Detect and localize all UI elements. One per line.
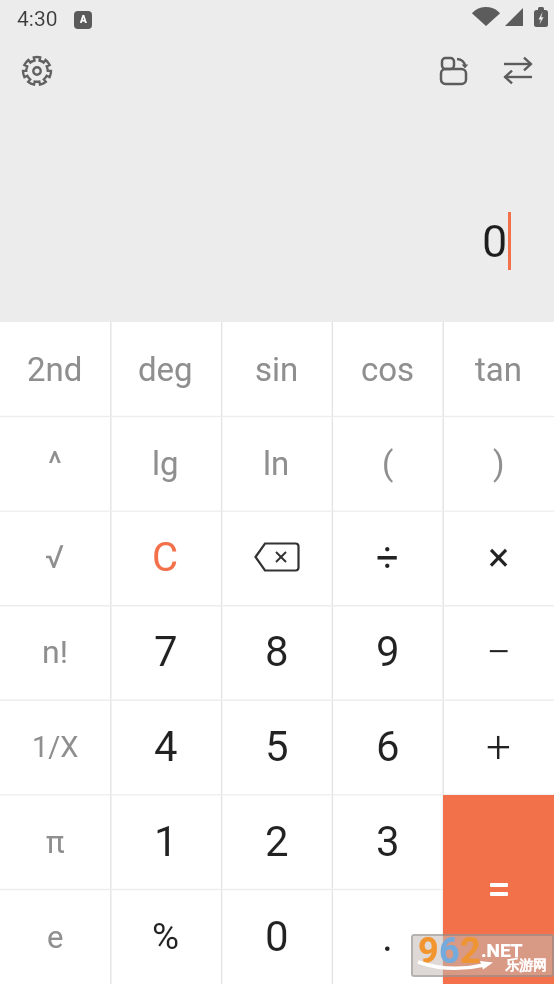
staticText: 3 [376,817,400,866]
staticText: × [488,534,510,581]
staticText: ln [263,444,290,483]
staticText: % [152,915,180,958]
staticText: 0 [482,215,508,268]
button[interactable]: cos [332,322,443,416]
button[interactable]: n! [0,604,110,699]
staticText: + [486,721,511,773]
staticText: ) [493,444,505,483]
staticText: 9 [418,934,439,972]
staticText: 4:30 [17,7,58,32]
staticText: 9 [376,627,400,676]
staticText: 7 [154,627,178,676]
staticText: lg [152,444,179,483]
button[interactable]: ÷ [332,510,443,604]
button[interactable]: 3 [332,794,443,889]
staticText: . [382,912,394,961]
staticText: π [46,824,65,860]
button[interactable]: ( [332,416,443,510]
button[interactable]: deg [110,322,221,416]
staticText: cos [361,350,415,389]
button[interactable]: 2nd [0,322,110,416]
button[interactable]: . [332,889,443,984]
button[interactable]: lg [110,416,221,510]
button[interactable] [428,49,472,93]
staticText: A [80,14,87,26]
button[interactable]: × [443,510,554,604]
button[interactable]: 1 [110,794,221,889]
button[interactable]: 4 [110,699,221,794]
staticText: 乐游网 [505,957,547,975]
staticText: 8 [265,627,289,676]
staticText: tan [475,350,522,389]
button[interactable]: 6 [332,699,443,794]
button[interactable]: tan [443,322,554,416]
staticText: deg [138,350,193,389]
button[interactable]: π [0,794,110,889]
button[interactable]: ) [443,416,554,510]
staticText: n! [42,633,68,671]
button[interactable]: 2 [221,794,332,889]
button[interactable]: 0 [221,889,332,984]
button[interactable]: + [443,699,554,794]
button[interactable] [443,795,554,984]
button[interactable]: % [110,889,221,984]
staticText: 0 [265,912,289,961]
staticText: 1/X [32,730,79,764]
button[interactable] [443,794,554,889]
staticText: 6 [439,934,460,972]
button[interactable]: e [0,889,110,984]
button[interactable]: ln [221,416,332,510]
staticText: 2nd [27,350,83,389]
button[interactable]: 5 [221,699,332,794]
staticText: 6 [376,722,400,771]
staticText: 5 [265,722,289,771]
button[interactable] [443,889,554,984]
staticText: C [152,534,179,581]
button[interactable]: 1/X [0,699,110,794]
button[interactable]: − [443,604,554,699]
button[interactable]: sin [221,322,332,416]
button[interactable]: 7 [110,604,221,699]
staticText: .NET [481,939,523,961]
staticText: e [47,919,64,955]
staticText: ^ [48,444,62,483]
staticText: − [486,626,512,678]
button[interactable] [221,510,332,604]
staticText: 1 [154,817,178,866]
button[interactable]: ^ [0,416,110,510]
button[interactable]: 9 [332,604,443,699]
button[interactable] [20,54,54,88]
button[interactable]: √ [0,510,110,604]
button[interactable] [492,49,536,93]
staticText: 4 [154,722,178,771]
staticText: √ [45,538,65,576]
button[interactable]: 8 [221,604,332,699]
staticText: ÷ [376,534,399,581]
staticText: 2 [460,934,481,972]
staticText: sin [255,350,299,389]
button[interactable]: C [110,510,221,604]
staticText: 2 [265,817,289,866]
staticText: ( [382,444,394,483]
